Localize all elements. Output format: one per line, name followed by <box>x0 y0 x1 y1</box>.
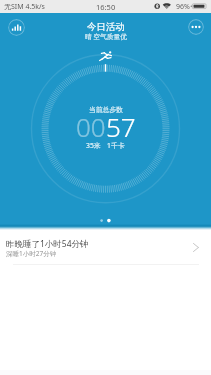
staticText: 晴 空气质量优 <box>85 32 127 41</box>
staticText: 昨晚睡了1小时54分钟 <box>6 238 89 250</box>
other: Running <box>99 51 112 61</box>
staticText: 00 <box>76 109 106 144</box>
staticText: 57 <box>106 109 136 144</box>
staticText: 16:50 <box>96 2 116 12</box>
staticText: 35米 <box>86 141 101 150</box>
staticText: 深睡1小时27分钟 <box>6 249 57 258</box>
staticText: 今日活动 <box>87 21 125 33</box>
staticText: 96% <box>176 2 190 12</box>
button[interactable]: Statistics <box>8 19 25 36</box>
staticText: 无SIM 4.5k/s <box>4 2 45 12</box>
staticText: 1千卡 <box>107 141 125 150</box>
button[interactable]: 昨晚睡了1小时54分钟 <box>0 232 211 265</box>
staticText: 当前总步数 <box>89 105 123 114</box>
button[interactable]: More options <box>188 19 204 35</box>
